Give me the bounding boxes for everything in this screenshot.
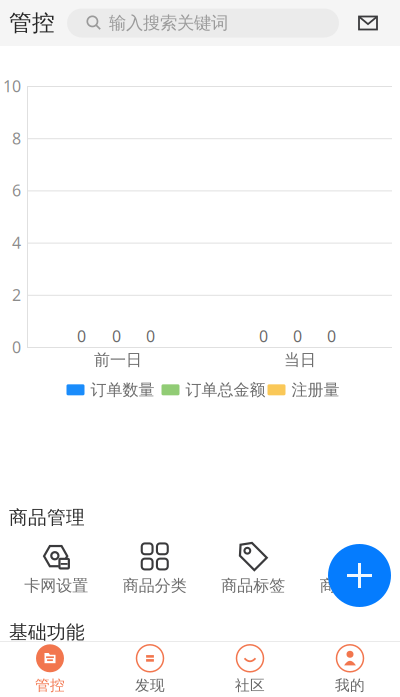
staticText: 当日 <box>284 350 316 370</box>
staticText: 商品管理 <box>320 576 384 596</box>
button[interactable]: 商品管理 <box>302 543 400 605</box>
button[interactable]: 消息 <box>358 14 378 31</box>
button[interactable]: 新建 <box>328 544 391 607</box>
staticText: 0 <box>146 325 155 347</box>
staticText: 2 <box>12 284 21 305</box>
staticText: 订单数量 <box>90 380 154 400</box>
staticText: 输入搜索关键词 <box>109 12 228 34</box>
staticText: 商品分类 <box>123 576 187 596</box>
staticText: 订单总金额 <box>185 380 265 400</box>
staticText: 基础功能 <box>9 621 85 644</box>
staticText: 0 <box>77 325 86 347</box>
staticText: 商品标签 <box>221 576 285 596</box>
staticText: 8 <box>12 128 21 149</box>
staticText: 10 <box>3 75 21 97</box>
staticText: 0 <box>12 336 21 358</box>
button[interactable]: 卡网设置 <box>7 543 105 605</box>
button[interactable]: 社区 <box>200 643 300 695</box>
staticText: 前一日 <box>94 350 142 370</box>
staticText: 管控 <box>35 676 65 694</box>
staticText: 6 <box>12 180 21 201</box>
staticText: 发现 <box>135 676 165 694</box>
button[interactable]: 商品标签 <box>204 543 302 605</box>
button[interactable]: 商品分类 <box>105 543 204 605</box>
staticText: 管控 <box>9 9 55 37</box>
button[interactable]: 发现 <box>100 643 200 695</box>
staticText: 卡网设置 <box>24 576 88 596</box>
staticText: 4 <box>12 232 21 253</box>
staticText: 我的 <box>335 676 365 694</box>
staticText: 0 <box>327 325 336 347</box>
staticText: 注册量 <box>291 380 339 400</box>
staticText: 社区 <box>235 676 265 694</box>
button[interactable]: 我的 <box>300 643 400 695</box>
staticText: 0 <box>259 325 268 347</box>
button[interactable]: 管控 <box>0 643 100 695</box>
staticText: 0 <box>293 325 302 347</box>
button[interactable]: 输入搜索关键词 <box>67 8 339 37</box>
staticText: 商品管理 <box>9 506 85 529</box>
staticText: 0 <box>112 325 121 347</box>
